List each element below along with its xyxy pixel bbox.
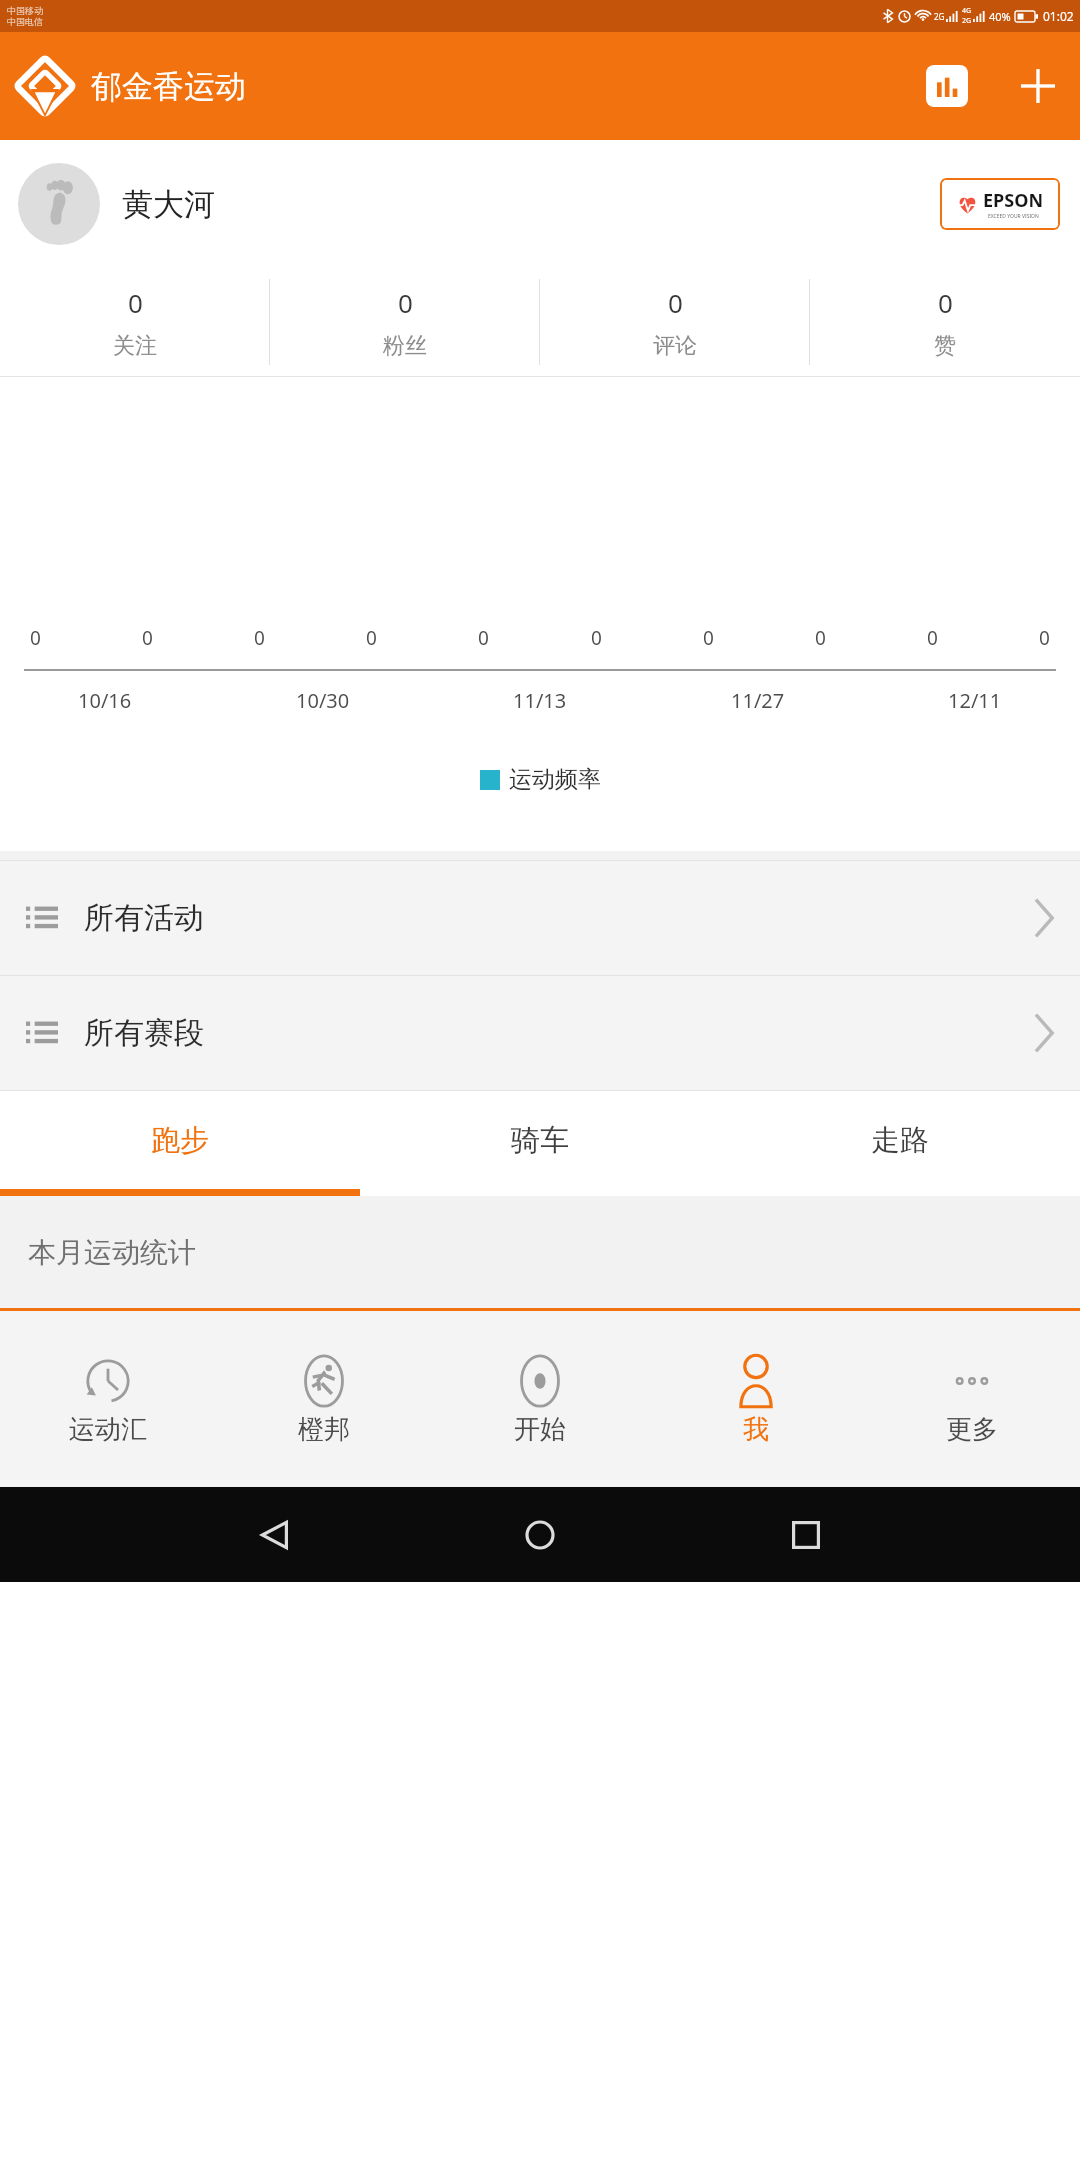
staticText: 10/30 [296,687,350,714]
button[interactable]: 骑车 [360,1091,720,1189]
staticText: 0 [815,625,826,651]
staticText: 所有活动 [84,899,204,937]
button[interactable]: 开始 [432,1311,648,1487]
staticText: 中国移动 [7,5,43,16]
staticText: 0 [938,285,953,320]
button[interactable]: Statistics [926,65,968,107]
staticText: 11/27 [731,687,785,714]
staticText: 更多 [946,1413,998,1446]
staticText: 橙邦 [298,1413,350,1446]
button[interactable]: 0 [810,268,1080,376]
staticText: 40% [989,9,1011,24]
staticText: 0 [927,625,938,651]
staticText: 10/16 [78,687,132,714]
staticText: 0 [366,625,377,651]
button[interactable]: Home [509,1504,571,1566]
button[interactable]: 运动汇 [0,1311,216,1487]
staticText: 黄大河 [122,185,215,224]
staticText: 本月运动统计 [28,1235,196,1270]
staticText: 0 [668,285,683,320]
staticText: 郁金香运动 [91,67,246,106]
button[interactable]: 所有赛段 [0,976,1080,1090]
staticText: 2G [962,16,972,26]
button[interactable]: 所有活动 [0,861,1080,975]
button[interactable]: Recent apps [775,1504,837,1566]
staticText: 骑车 [511,1122,569,1159]
button[interactable]: Avatar [18,163,100,245]
staticText: 0 [591,625,602,651]
staticText: 4G [962,6,972,16]
staticText: 我 [743,1413,769,1446]
staticText: 0 [478,625,489,651]
staticText: 0 [142,625,153,651]
staticText: 0 [254,625,265,651]
staticText: 运动频率 [509,765,601,794]
staticText: 运动汇 [69,1413,147,1446]
staticText: 评论 [653,332,697,360]
staticText: 0 [128,285,143,320]
staticText: 粉丝 [383,332,427,360]
button[interactable]: Add [1014,62,1062,110]
staticText: 中国电信 [7,16,43,27]
staticText: 0 [703,625,714,651]
staticText: 所有赛段 [84,1014,204,1052]
button[interactable]: 更多 [864,1311,1080,1487]
staticText: EPSON [983,188,1044,213]
button[interactable]: 走路 [720,1091,1080,1189]
button[interactable]: 我 [648,1311,864,1487]
button[interactable]: EPSON device [940,178,1060,230]
button[interactable]: Back [244,1504,306,1566]
staticText: EXCEED YOUR VISION [988,213,1039,220]
staticText: 走路 [871,1122,929,1159]
button[interactable]: 0 [270,268,540,376]
staticText: 0 [1039,625,1050,651]
staticText: 关注 [113,332,157,360]
staticText: 11/13 [513,687,567,714]
staticText: 12/11 [948,687,1002,714]
staticText: 0 [398,285,413,320]
staticText: 0 [30,625,41,651]
staticText: 跑步 [151,1122,209,1159]
staticText: 2G [934,11,945,22]
button[interactable]: 橙邦 [216,1311,432,1487]
staticText: 01:02 [1043,8,1074,24]
button[interactable]: 0 [540,268,810,376]
button[interactable]: 0 [0,268,270,376]
staticText: 赞 [934,332,956,360]
button[interactable]: 跑步 [0,1091,360,1189]
staticText: 开始 [514,1413,566,1446]
